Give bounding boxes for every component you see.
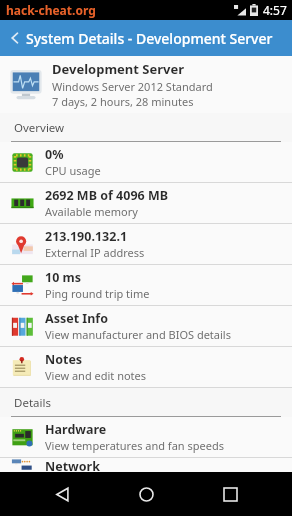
button[interactable]: Network: [0, 458, 292, 472]
button[interactable]: Back: [40, 472, 84, 516]
staticText: 10 ms: [45, 269, 82, 286]
other: Back: [7, 30, 23, 46]
button[interactable]: 213.190.132.1: [0, 224, 292, 264]
staticText: hack-cheat.org: [6, 2, 96, 18]
staticText: 0%: [45, 146, 64, 163]
staticText: 2692 MB of 4096 MB: [45, 187, 169, 204]
staticText: Available memory: [45, 204, 138, 219]
staticText: External IP address: [45, 245, 145, 260]
staticText: Details: [14, 395, 51, 411]
staticText: Asset Info: [45, 310, 108, 327]
staticText: 7 days, 2 hours, 28 minutes: [52, 94, 194, 109]
staticText: CPU usage: [45, 163, 101, 178]
button[interactable]: Hardware: [0, 417, 292, 457]
button[interactable]: Back: [0, 20, 292, 56]
staticText: View manufacturer and BIOS details: [45, 327, 231, 342]
button[interactable]: Notes: [0, 347, 292, 387]
button[interactable]: Home: [124, 472, 168, 516]
staticText: Network: [45, 458, 100, 472]
staticText: Ping round trip time: [45, 286, 150, 301]
staticText: 213.190.132.1: [45, 228, 128, 245]
button[interactable]: Development Server: [0, 56, 292, 113]
button[interactable]: Asset Info: [0, 306, 292, 346]
staticText: System Details - Development Server: [26, 29, 273, 48]
button[interactable]: 10 ms: [0, 265, 292, 305]
staticText: View and edit notes: [45, 368, 147, 383]
button[interactable]: 0%: [0, 142, 292, 182]
button[interactable]: Recent apps: [208, 472, 252, 516]
button[interactable]: 2692 MB of 4096 MB: [0, 183, 292, 223]
staticText: Hardware: [45, 421, 107, 438]
staticText: Windows Server 2012 Standard: [52, 79, 213, 94]
staticText: View temperatures and fan speeds: [45, 438, 224, 453]
staticText: Overview: [14, 120, 65, 136]
staticText: Development Server: [52, 60, 185, 78]
staticText: 4:57: [263, 2, 287, 18]
staticText: Notes: [45, 351, 83, 368]
